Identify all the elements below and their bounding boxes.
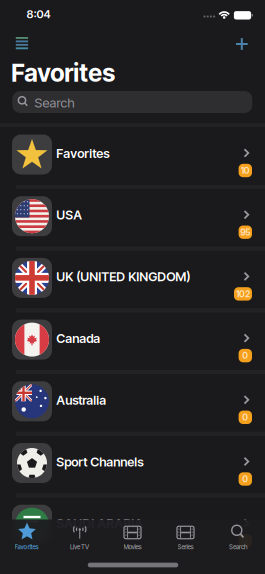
staticText: Favorites: [11, 58, 115, 88]
button[interactable]: Menu: [10, 31, 34, 55]
staticText: Search: [34, 95, 74, 110]
staticText: 10: [241, 165, 250, 176]
button[interactable]: Sport Channels: [0, 432, 265, 494]
button[interactable]: Favorites: [0, 519, 53, 573]
staticText: 8:04: [26, 7, 50, 21]
staticText: Series: [177, 543, 193, 551]
staticText: 102: [236, 288, 250, 299]
staticText: Favorites: [14, 543, 38, 551]
staticText: Canada: [56, 331, 100, 346]
staticText: Live TV: [70, 543, 89, 551]
staticText: 0: [242, 535, 248, 546]
staticText: 0: [242, 412, 248, 423]
staticText: 0: [242, 474, 248, 484]
staticText: 0: [242, 350, 248, 361]
button[interactable]: Movies: [106, 519, 159, 573]
staticText: Sport Channels: [56, 454, 143, 469]
button[interactable]: SAUDI ARABIA: [0, 494, 265, 556]
button[interactable]: USA: [0, 185, 265, 247]
staticText: USA: [56, 207, 82, 223]
button[interactable]: Search: [212, 519, 265, 573]
button[interactable]: Series: [159, 519, 212, 573]
button[interactable]: Australia: [0, 370, 265, 432]
staticText: UK (UNITED KINGDOM): [56, 269, 190, 284]
staticText: Australia: [56, 392, 106, 408]
button[interactable]: Canada: [0, 309, 265, 370]
staticText: Favorites: [56, 146, 109, 161]
button[interactable]: Favorites: [0, 124, 265, 185]
staticText: Search: [229, 543, 248, 551]
button[interactable]: Live TV: [53, 519, 106, 573]
button[interactable]: Search: [12, 91, 252, 113]
button[interactable]: UK (UNITED KINGDOM): [0, 247, 265, 309]
staticText: Movies: [123, 543, 141, 551]
staticText: SAUDI ARABIA: [56, 516, 143, 531]
staticText: 95: [240, 227, 250, 238]
button[interactable]: Add: [230, 32, 254, 56]
